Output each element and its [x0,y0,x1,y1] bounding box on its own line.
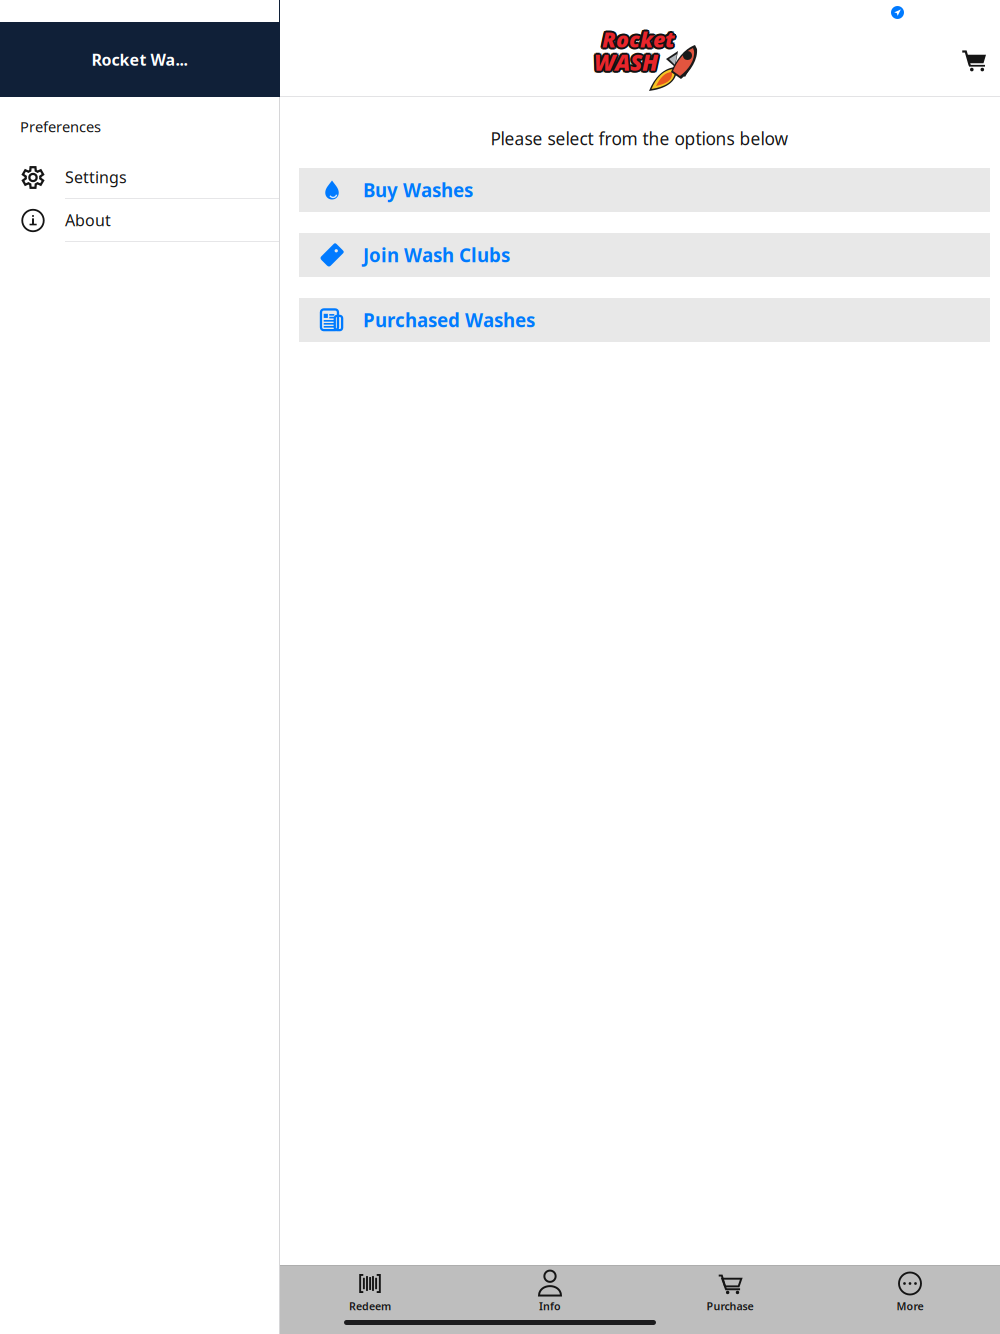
staticText: More [896,1299,923,1313]
staticText: Rocket [602,27,675,55]
button[interactable]: Cart [952,38,996,82]
staticText: Rocket [601,24,674,52]
staticText: Settings [65,166,127,188]
staticText: Rocket [602,23,675,51]
staticText: Rocket [604,25,677,53]
staticText: WASH [596,47,660,77]
staticText: WASH [593,48,657,78]
staticText: Purchase [706,1299,753,1313]
staticText: Redeem [349,1299,391,1313]
button[interactable]: Join Wash Clubs [299,233,990,277]
staticText: Purchased Washes [363,308,535,332]
button[interactable]: Info [460,1266,640,1313]
staticText: WASH [594,47,658,77]
button[interactable]: About [0,199,279,242]
staticText: Rocket [603,24,676,52]
staticText: WASH [594,45,658,75]
button[interactable]: Redeem [280,1266,460,1313]
staticText: Info [539,1299,561,1313]
staticText: Rocket [601,26,674,55]
button[interactable]: Buy Washes [299,168,990,212]
button[interactable]: Settings [0,156,279,199]
staticText: WASH [595,46,659,76]
staticText: Rocket [603,26,676,55]
staticText: Rocket [600,25,673,53]
staticText: Rocket Wa... [91,49,187,70]
staticText: Please select from the options below [490,127,788,150]
button[interactable]: Purchase [640,1266,820,1313]
staticText: WASH [593,46,657,76]
staticText: About [65,209,111,231]
staticText: WASH [595,48,659,78]
staticText: WASH [592,47,656,77]
button[interactable]: Purchased Washes [299,298,990,342]
button[interactable]: More [820,1266,1000,1313]
staticText: Join Wash Clubs [363,243,510,267]
staticText: Rocket [602,25,675,53]
staticText: WASH [594,49,658,79]
staticText: Preferences [20,117,101,136]
staticText: Buy Washes [363,178,473,202]
